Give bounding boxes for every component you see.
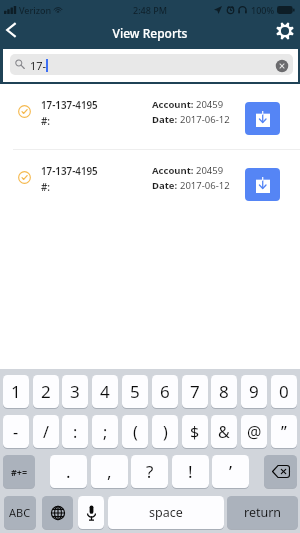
staticText: return <box>244 504 282 521</box>
staticText: . <box>66 460 71 483</box>
button[interactable]: 8 <box>211 375 237 408</box>
staticText: View Reports <box>0 25 300 41</box>
staticText: 5 <box>130 380 140 403</box>
staticText: ABC <box>9 505 31 520</box>
button[interactable]: Dictate <box>78 496 104 529</box>
button[interactable]: ABC <box>4 496 36 529</box>
staticText: 3 <box>70 380 80 403</box>
button[interactable]: 6 <box>152 375 178 408</box>
staticText: 1 <box>11 380 21 403</box>
staticText: #: <box>41 115 51 128</box>
staticText: - <box>13 421 19 443</box>
staticText: Account: <box>152 164 196 177</box>
staticText: Verizon <box>19 4 52 16</box>
staticText: 4 <box>100 380 110 403</box>
button[interactable]: 4 <box>92 375 118 408</box>
staticText: ’ <box>229 460 232 483</box>
staticText: 6 <box>160 380 170 403</box>
button[interactable]: ’ <box>212 455 249 488</box>
staticText: 17-137-4195 <box>41 99 98 112</box>
button[interactable]: 17-137-4195 <box>0 84 300 149</box>
staticText: @ <box>247 421 262 443</box>
staticText: 2017-06-12 <box>180 113 230 126</box>
button[interactable]: Download <box>245 168 280 201</box>
button[interactable]: Change keyboard <box>42 496 73 529</box>
button[interactable]: Settings <box>268 18 300 48</box>
button[interactable]: & <box>211 415 237 448</box>
staticText: 2:48 PM <box>0 4 300 16</box>
staticText: 20459 <box>196 164 224 177</box>
button[interactable]: Clear text <box>274 58 289 73</box>
button[interactable]: : <box>62 415 88 448</box>
button[interactable]: ; <box>92 415 118 448</box>
staticText: $ <box>190 421 200 443</box>
button[interactable]: 7 <box>182 375 208 408</box>
staticText: Date: <box>152 179 180 192</box>
button[interactable]: ) <box>152 415 178 448</box>
staticText: 9 <box>249 380 259 403</box>
staticText: Account: <box>152 98 196 111</box>
staticText: #: <box>41 181 51 194</box>
button[interactable]: 1 <box>3 375 29 408</box>
staticText: Date: <box>152 113 180 126</box>
staticText: 8 <box>219 380 229 403</box>
button[interactable]: ? <box>131 455 168 488</box>
button[interactable]: , <box>91 455 128 488</box>
button[interactable]: 17- <box>10 54 293 75</box>
button[interactable]: Delete <box>264 455 297 488</box>
staticText: ; <box>103 421 108 443</box>
button[interactable]: ” <box>271 415 297 448</box>
button[interactable]: ! <box>172 455 209 488</box>
button[interactable]: 17-137-4195 <box>0 150 300 215</box>
staticText: ) <box>163 421 168 443</box>
button[interactable]: #+= <box>3 455 35 488</box>
staticText: ! <box>188 460 193 483</box>
button[interactable]: . <box>50 455 87 488</box>
staticText: 100% <box>251 4 275 16</box>
staticText: 2 <box>41 380 51 403</box>
staticText: : <box>73 421 78 443</box>
button[interactable]: 0 <box>271 375 297 408</box>
staticText: ( <box>133 421 138 443</box>
button[interactable]: @ <box>241 415 267 448</box>
button[interactable]: $ <box>182 415 208 448</box>
button[interactable]: space <box>108 496 224 529</box>
button[interactable]: 3 <box>62 375 88 408</box>
button[interactable]: Download <box>245 102 280 135</box>
staticText: & <box>218 421 230 443</box>
button[interactable]: return <box>227 496 298 529</box>
staticText: ” <box>281 421 287 443</box>
staticText: 17-137-4195 <box>41 165 98 178</box>
button[interactable]: 9 <box>241 375 267 408</box>
staticText: space <box>149 504 183 521</box>
staticText: , <box>107 460 112 483</box>
button[interactable]: 2 <box>33 375 59 408</box>
staticText: #+= <box>11 466 28 478</box>
staticText: 17- <box>30 58 47 73</box>
button[interactable]: Back <box>0 18 26 48</box>
button[interactable]: ( <box>122 415 148 448</box>
staticText: 7 <box>190 380 200 403</box>
staticText: 0 <box>279 380 289 403</box>
staticText: 20459 <box>196 98 224 111</box>
button[interactable]: - <box>3 415 29 448</box>
button[interactable]: 5 <box>122 375 148 408</box>
staticText: / <box>43 421 49 443</box>
staticText: 2017-06-12 <box>180 179 230 192</box>
button[interactable]: / <box>33 415 59 448</box>
staticText: ? <box>146 460 154 483</box>
